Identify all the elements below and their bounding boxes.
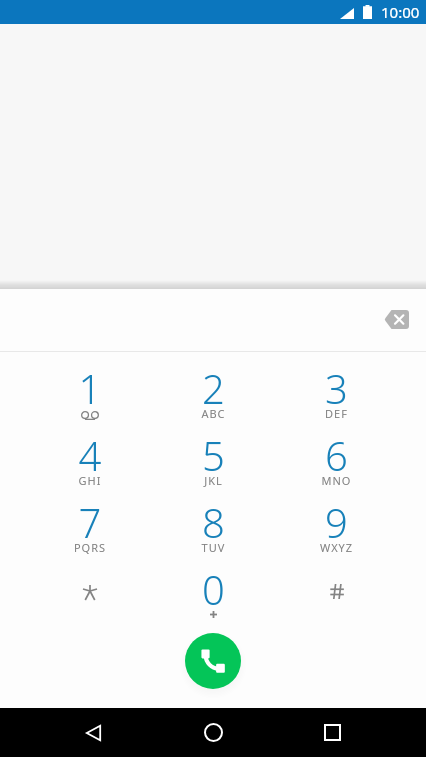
button[interactable]: 4	[28, 419, 152, 486]
staticText: PQRS	[28, 540, 152, 555]
staticText: 2	[152, 361, 275, 415]
staticText: 5	[152, 428, 275, 482]
staticText: DEF	[275, 406, 398, 421]
button[interactable]	[275, 553, 398, 620]
staticText: 10:00	[381, 2, 420, 22]
button[interactable]: 6	[275, 419, 398, 486]
button[interactable]: 5	[152, 419, 275, 486]
staticText: 9	[275, 495, 398, 549]
button[interactable]: Back	[69, 708, 118, 757]
staticText: 8	[152, 495, 275, 549]
staticText: GHI	[28, 473, 152, 488]
staticText: 0	[152, 562, 275, 616]
staticText: ABC	[152, 406, 275, 421]
button[interactable]	[28, 553, 152, 620]
button[interactable]: 0	[152, 553, 275, 620]
button[interactable]: 2	[152, 352, 275, 419]
button[interactable]: Call	[185, 633, 241, 689]
staticText: 3	[275, 361, 398, 415]
button[interactable]: 3	[275, 352, 398, 419]
staticText: TUV	[152, 540, 275, 555]
button[interactable]: Recents	[308, 708, 357, 757]
staticText: MNO	[275, 473, 398, 488]
button[interactable]: 1	[28, 352, 152, 419]
staticText: 7	[28, 495, 152, 549]
button[interactable]: Backspace	[374, 297, 418, 341]
staticText: 4	[28, 428, 152, 482]
staticText: JKL	[152, 473, 275, 488]
button[interactable]: 8	[152, 486, 275, 553]
button[interactable]: Home	[189, 708, 238, 757]
button[interactable]: 9	[275, 486, 398, 553]
button[interactable]: 7	[28, 486, 152, 553]
staticText: 6	[275, 428, 398, 482]
staticText: 1	[28, 361, 152, 415]
staticText: WXYZ	[275, 540, 398, 555]
